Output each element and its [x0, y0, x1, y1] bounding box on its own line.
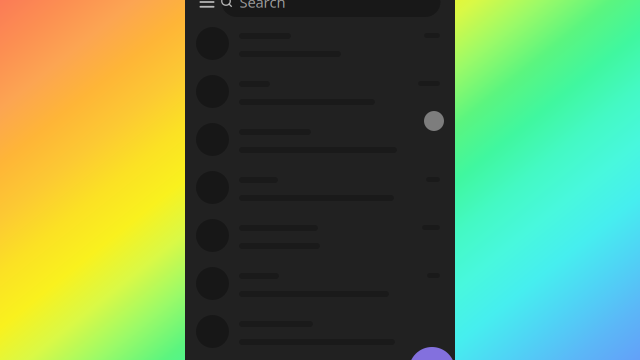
button[interactable] [185, 68, 455, 116]
button[interactable] [185, 116, 455, 164]
button[interactable]: New message [409, 347, 455, 360]
button[interactable]: Search [227, 0, 446, 17]
button[interactable] [185, 308, 455, 356]
button[interactable]: Menu [194, 0, 220, 13]
button[interactable] [185, 164, 455, 212]
button[interactable] [185, 260, 455, 308]
staticText: Search [239, 0, 285, 12]
